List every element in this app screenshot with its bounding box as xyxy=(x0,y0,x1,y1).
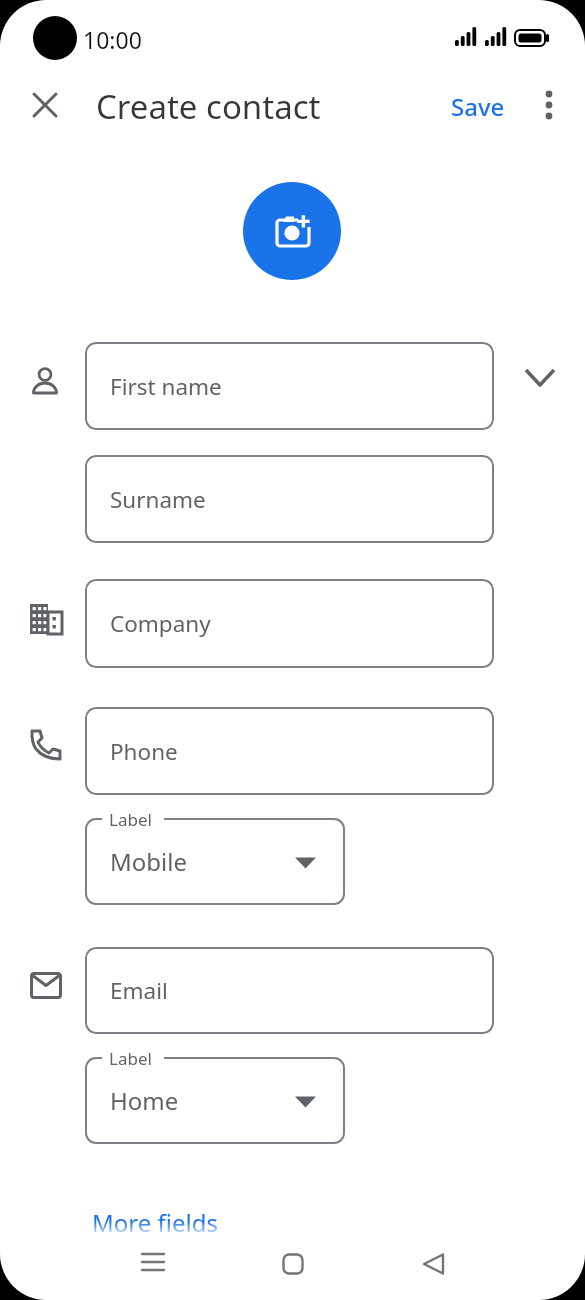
staticText: Create contact xyxy=(96,84,321,129)
button[interactable] xyxy=(518,356,562,400)
button[interactable]: Save xyxy=(0,0,54,33)
staticText: Company xyxy=(110,608,211,639)
button[interactable]: Company xyxy=(85,579,494,668)
staticText: Surname xyxy=(110,484,206,515)
staticText: 10:00 xyxy=(83,24,142,55)
button[interactable] xyxy=(535,85,563,125)
staticText: Label xyxy=(109,1047,152,1070)
button[interactable] xyxy=(27,87,63,123)
button[interactable]: Surname xyxy=(85,455,494,543)
staticText: Home xyxy=(110,1084,179,1117)
button[interactable]: More fields xyxy=(0,0,126,33)
staticText: Phone xyxy=(110,736,178,767)
staticText: Mobile xyxy=(110,845,187,878)
button[interactable]: Label xyxy=(85,818,345,905)
button[interactable] xyxy=(411,1242,455,1286)
staticText: Label xyxy=(109,808,152,831)
staticText: Email xyxy=(110,975,168,1006)
button[interactable]: First name xyxy=(85,342,494,430)
button[interactable]: Phone xyxy=(85,707,494,795)
button[interactable] xyxy=(243,182,341,280)
staticText: First name xyxy=(110,371,222,402)
button[interactable] xyxy=(271,1242,315,1286)
button[interactable]: Email xyxy=(85,947,494,1034)
button[interactable]: Label xyxy=(85,1057,345,1144)
button[interactable] xyxy=(131,1242,175,1286)
